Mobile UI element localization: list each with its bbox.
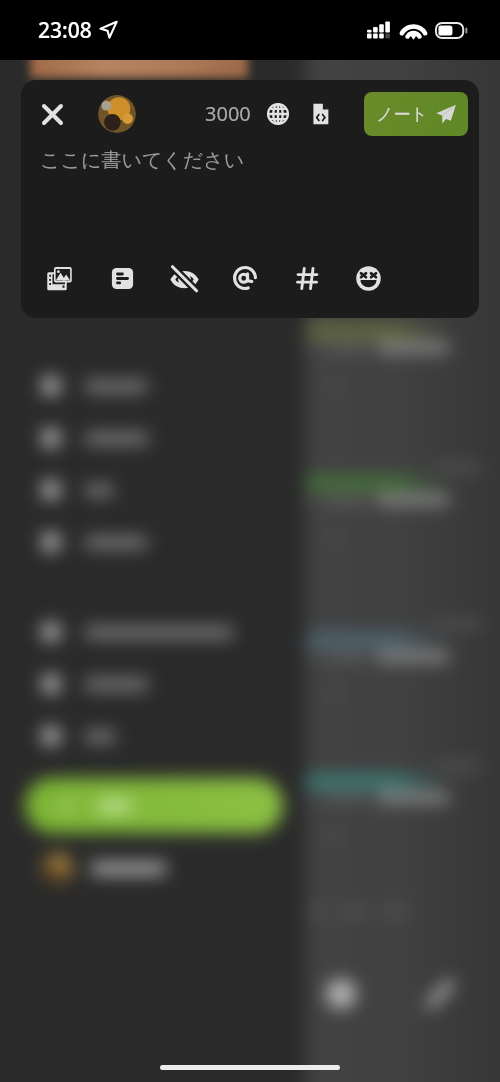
- button[interactable]: [42, 464, 306, 516]
- button[interactable]: [42, 658, 306, 710]
- button[interactable]: Account: [98, 95, 136, 133]
- button[interactable]: Attach media: [41, 260, 77, 296]
- button[interactable]: [42, 606, 306, 658]
- staticText: ノート: [376, 104, 428, 125]
- button[interactable]: Poll: [104, 260, 140, 296]
- button[interactable]: Visibility: [260, 96, 296, 132]
- button[interactable]: [42, 516, 306, 568]
- staticText: 3000: [205, 100, 251, 127]
- button[interactable]: Close: [32, 94, 72, 134]
- button[interactable]: Emoji: [350, 260, 386, 296]
- button[interactable]: Mention: [227, 260, 263, 296]
- button[interactable]: Hashtag: [289, 260, 325, 296]
- button[interactable]: ノート: [364, 92, 468, 136]
- button[interactable]: Content warning: [166, 260, 202, 296]
- staticText: 23:08: [38, 16, 92, 45]
- button[interactable]: [42, 360, 306, 412]
- staticText: ここに書いてください: [40, 148, 245, 173]
- button[interactable]: [42, 412, 306, 464]
- button[interactable]: [42, 710, 306, 762]
- button[interactable]: Source code: [302, 96, 338, 132]
